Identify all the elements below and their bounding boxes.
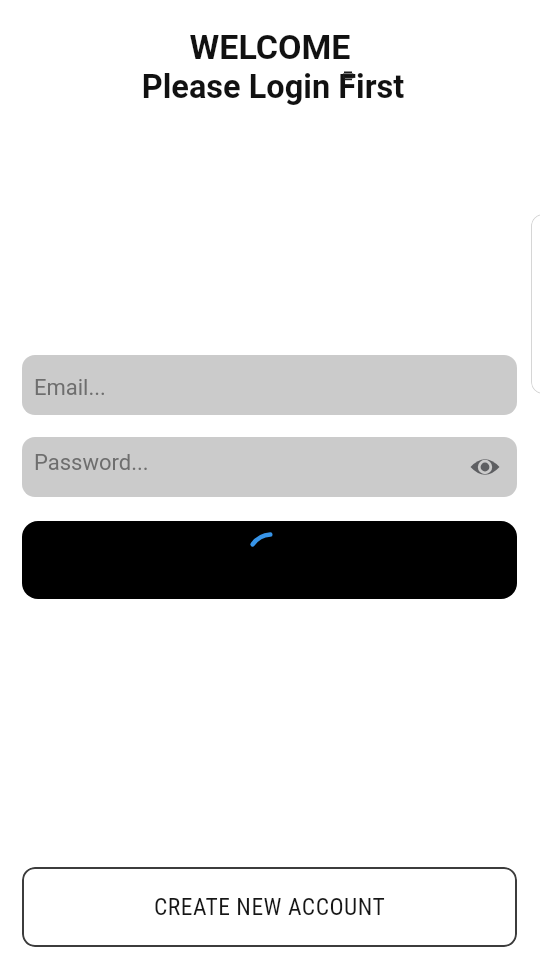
button[interactable]: Email... bbox=[22, 355, 517, 415]
staticText: Password... bbox=[34, 450, 149, 476]
staticText: Email... bbox=[34, 375, 106, 401]
button[interactable] bbox=[22, 521, 517, 599]
button[interactable]: Password... bbox=[22, 437, 517, 497]
staticText: CREATE NEW ACCOUNT bbox=[154, 893, 386, 921]
staticText: WELCOME bbox=[0, 27, 540, 67]
button[interactable]: CREATE NEW ACCOUNT bbox=[22, 867, 517, 947]
staticText: Please Login First bbox=[3, 68, 540, 106]
